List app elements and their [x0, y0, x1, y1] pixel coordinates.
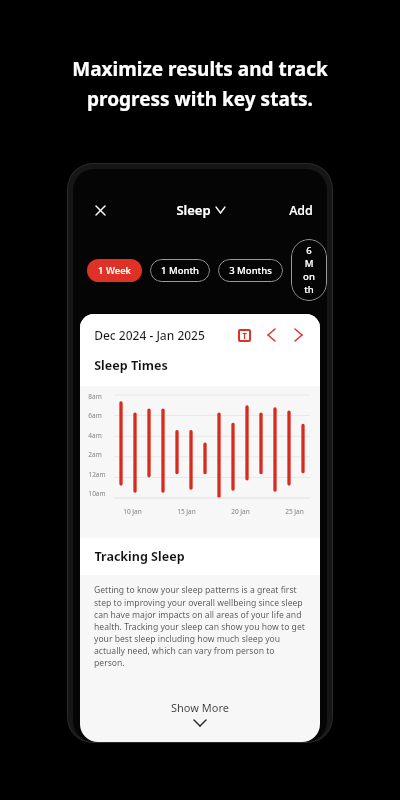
button[interactable]: 3 Months	[218, 259, 283, 282]
button[interactable]: 1 Month	[150, 259, 210, 282]
staticText: Getting to know your sleep patterns is a…	[94, 584, 306, 668]
staticText: 8am	[88, 392, 102, 401]
staticText: T	[242, 330, 247, 341]
staticText: 3 Months	[229, 264, 272, 277]
staticText: Show More	[171, 700, 229, 715]
button[interactable]: Today	[237, 328, 252, 343]
staticText: 6 Month	[302, 244, 316, 296]
staticText: 10am	[88, 489, 106, 498]
button[interactable]: Add	[275, 198, 327, 223]
button[interactable]: 1 Week	[87, 259, 142, 282]
staticText: Tracking Sleep	[94, 548, 185, 565]
staticText: 25 Jan	[285, 507, 304, 516]
staticText: 6am	[88, 411, 102, 420]
button[interactable]: 6 Month	[291, 239, 327, 301]
staticText: 4am	[88, 431, 102, 440]
staticText: 2am	[88, 450, 102, 459]
staticText: Maximize results and track	[72, 56, 328, 82]
button[interactable]: Show More	[80, 700, 320, 742]
button[interactable]: Close	[87, 197, 113, 223]
staticText: 1 Month	[161, 264, 199, 277]
staticText: 10 Jan	[123, 507, 142, 516]
staticText: 20 Jan	[231, 507, 250, 516]
staticText: 12am	[88, 470, 106, 479]
button[interactable]: Previous period	[263, 327, 279, 343]
staticText: Add	[289, 202, 313, 219]
button[interactable]: Sleep	[176, 201, 225, 219]
button[interactable]: Next period	[290, 327, 306, 343]
staticText: 1 Week	[98, 264, 131, 277]
staticText: Sleep Times	[94, 357, 168, 374]
staticText: progress with key stats.	[87, 86, 313, 112]
staticText: 15 Jan	[177, 507, 196, 516]
staticText: Dec 2024 - Jan 2025	[94, 327, 205, 343]
staticText: Sleep	[176, 201, 211, 219]
